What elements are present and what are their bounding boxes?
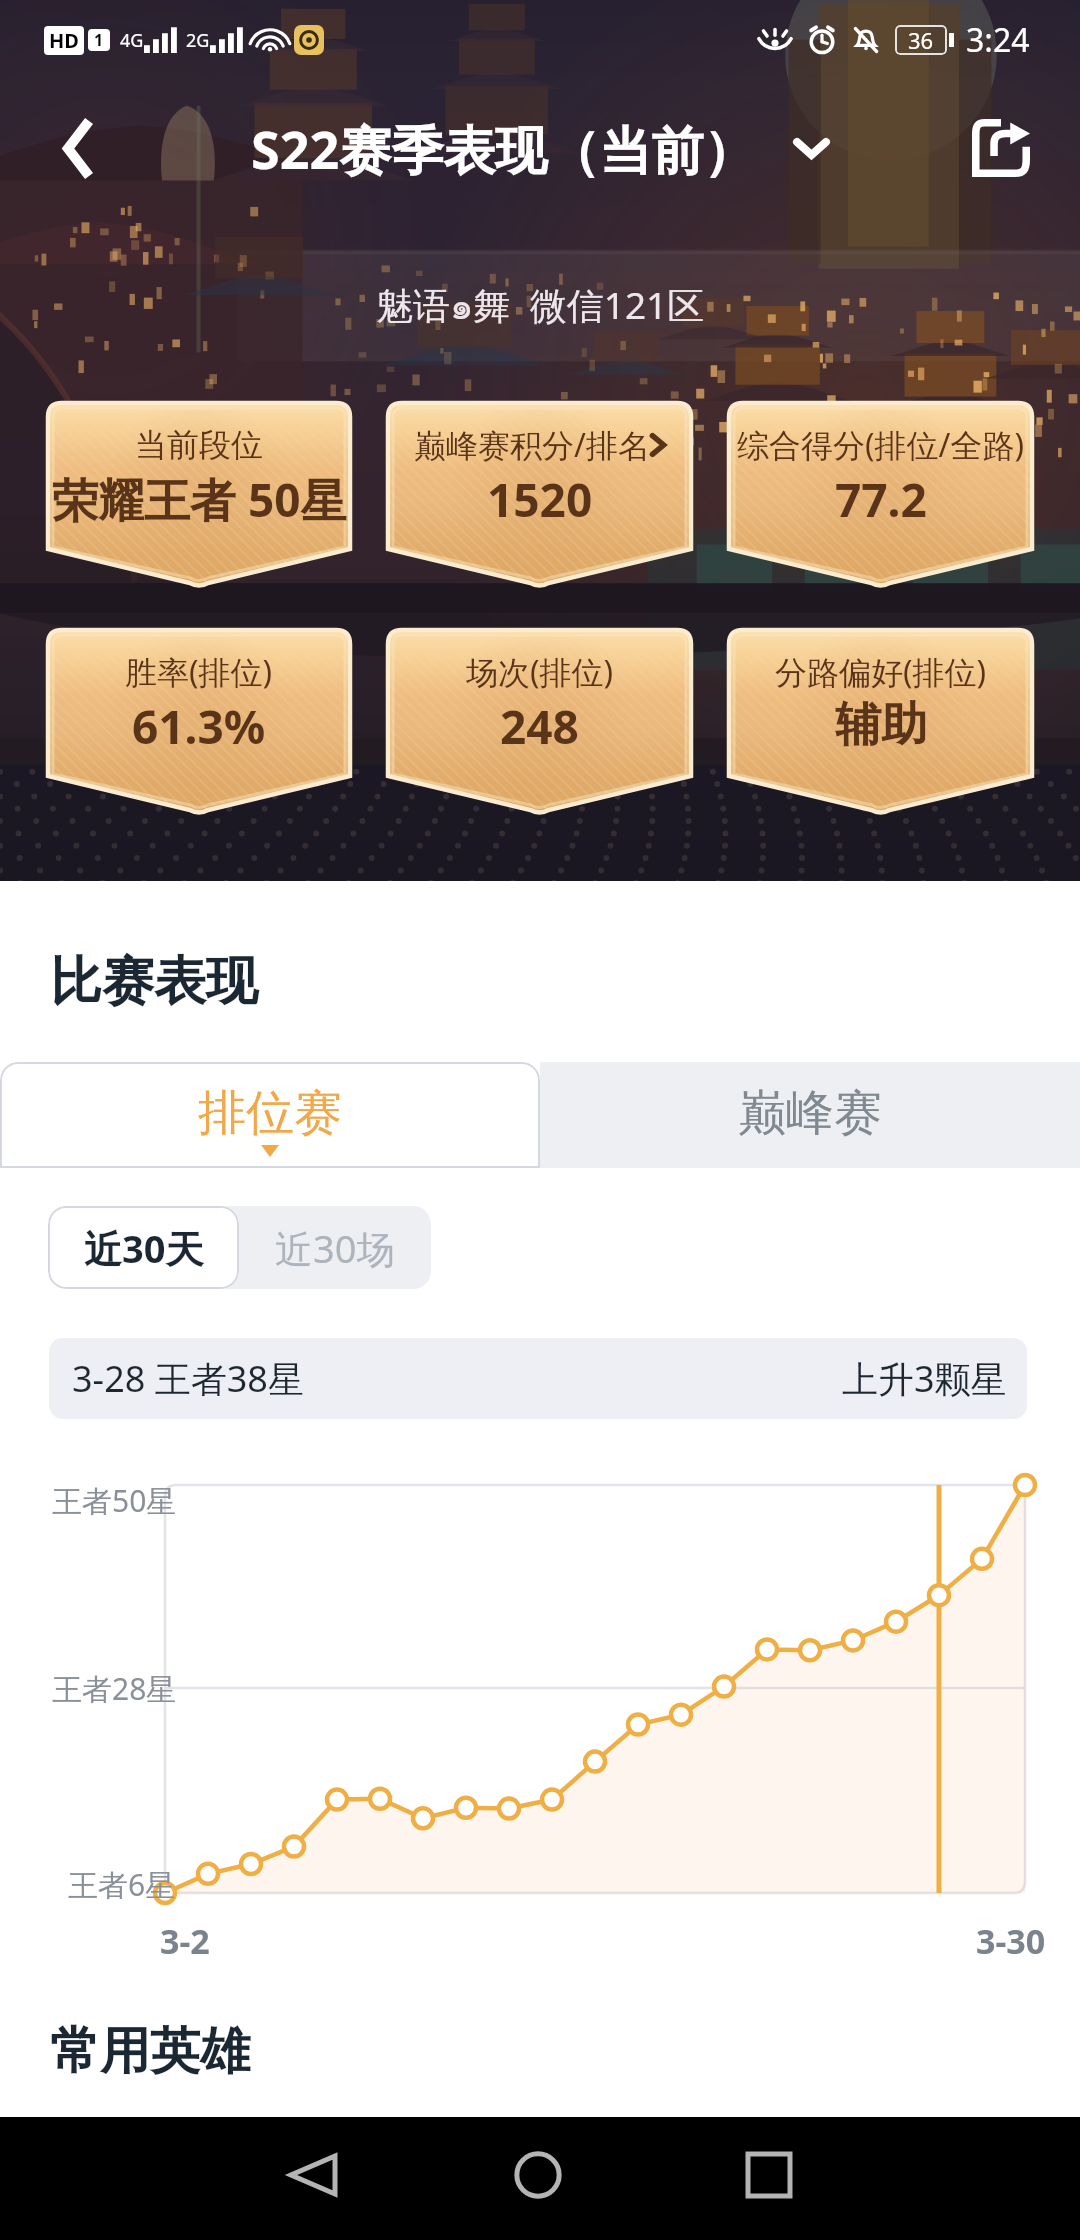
button[interactable]: 综合得分(排位/全路): [729, 403, 1032, 588]
staticText: 77.2: [835, 468, 927, 528]
staticText: HD: [49, 27, 79, 54]
button[interactable]: 胜率(排位): [48, 630, 350, 815]
staticText: 荣耀王者 50星: [52, 468, 347, 528]
staticText: 比赛表现: [50, 949, 258, 1015]
staticText: 2G: [186, 28, 210, 53]
staticText: 魅语๑舞 微信121区: [376, 276, 705, 335]
staticText: 王者28星: [52, 1668, 177, 1708]
button[interactable]: 场次(排位): [388, 630, 691, 815]
staticText: 3-30: [976, 1918, 1046, 1964]
staticText: 场次(排位): [466, 650, 614, 694]
staticText: 王者50星: [52, 1480, 177, 1520]
staticText: 1520: [487, 468, 593, 528]
button[interactable]: Back: [253, 2115, 373, 2235]
staticText: 综合得分(排位/全路): [737, 423, 1025, 467]
button[interactable]: 分路偏好(排位): [729, 630, 1032, 815]
staticText: 近30天: [84, 1222, 204, 1274]
staticText: 当前段位: [135, 425, 263, 465]
staticText: 分路偏好(排位): [775, 650, 987, 694]
staticText: 近30场: [275, 1222, 395, 1274]
staticText: 辅助: [835, 696, 927, 754]
button[interactable]: Back: [27, 98, 127, 198]
staticText: 王者6星: [68, 1864, 176, 1904]
staticText: 胜率(排位): [125, 650, 273, 694]
staticText: S22赛季表现（当前）: [251, 113, 756, 184]
staticText: 3:24: [966, 18, 1030, 62]
staticText: 上升3颗星: [842, 1354, 1007, 1403]
button[interactable]: 近30天: [48, 1206, 239, 1289]
staticText: 3-2: [160, 1918, 210, 1964]
staticText: 36: [908, 25, 934, 55]
staticText: 巅峰赛积分/排名: [414, 423, 650, 467]
staticText: 3-28 王者38星: [72, 1354, 304, 1403]
staticText: 排位赛: [198, 1083, 342, 1139]
button[interactable]: Share: [946, 98, 1056, 198]
button[interactable]: 巅峰赛积分/排名: [388, 403, 691, 588]
staticText: 1: [94, 29, 104, 51]
staticText: 61.3%: [132, 695, 266, 755]
button[interactable]: 当前段位: [48, 403, 350, 588]
staticText: 4G: [120, 28, 144, 53]
button[interactable]: Home: [478, 2115, 598, 2235]
button[interactable]: Recents: [709, 2115, 829, 2235]
button[interactable]: 巅峰赛: [540, 1062, 1080, 1168]
staticText: 常用英雄: [50, 2020, 250, 2083]
staticText: 巅峰赛: [738, 1083, 882, 1139]
staticText: 248: [500, 695, 579, 755]
button[interactable]: 排位赛: [0, 1062, 540, 1168]
button[interactable]: 近30场: [239, 1206, 431, 1289]
button[interactable]: S22赛季表现（当前）: [251, 113, 829, 184]
